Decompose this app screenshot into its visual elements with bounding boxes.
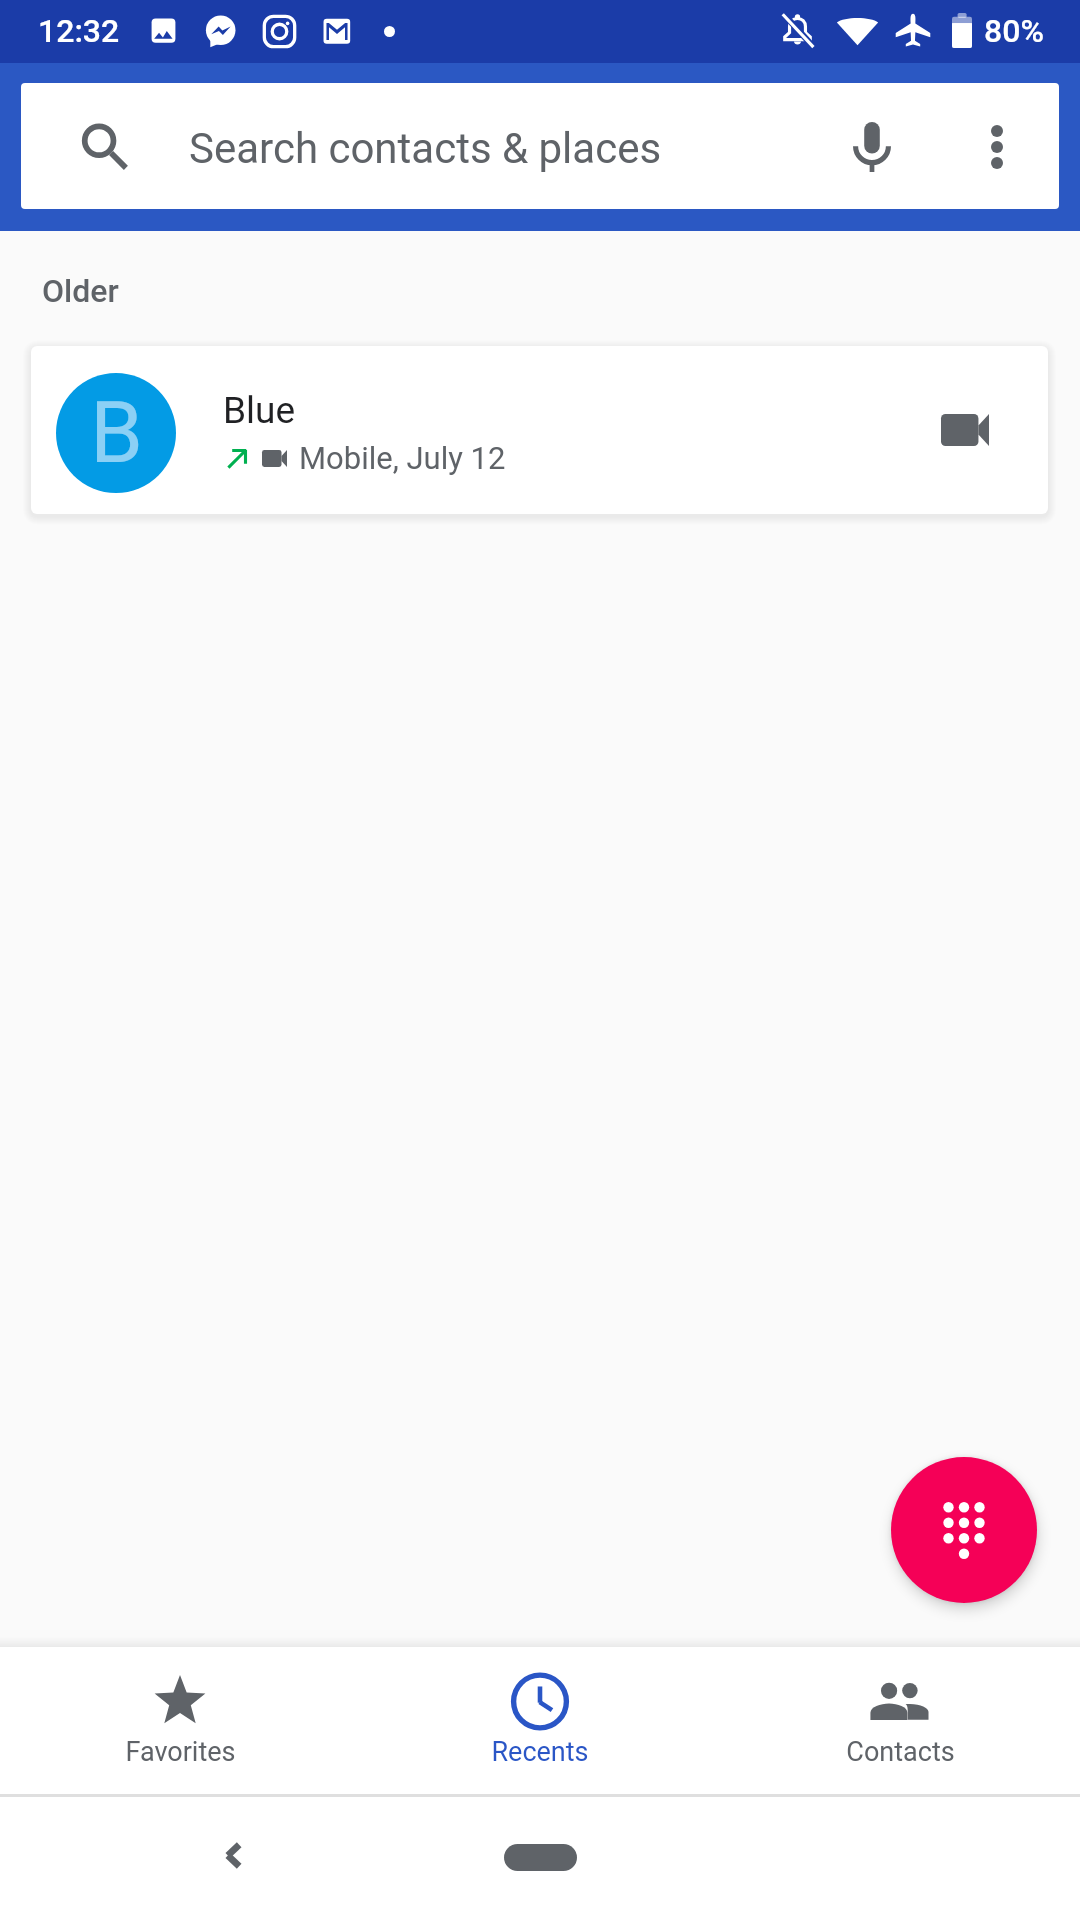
button[interactable]: Favorites <box>0 1647 360 1795</box>
staticText: Favorites <box>125 1736 236 1768</box>
button[interactable]: Voice search <box>821 96 923 198</box>
button[interactable]: B <box>31 346 1048 514</box>
staticText: 12:32 <box>38 12 120 50</box>
button[interactable]: Recents <box>360 1647 720 1795</box>
staticText: B <box>90 383 143 483</box>
staticText: Recents <box>491 1736 589 1768</box>
staticText: Mobile, July 12 <box>299 440 506 476</box>
button[interactable]: Home <box>504 1844 577 1871</box>
staticText: Contacts <box>846 1736 955 1768</box>
button[interactable]: Search contacts & places <box>21 83 1059 209</box>
button[interactable]: Contacts <box>720 1647 1080 1795</box>
staticText: Search contacts & places <box>189 124 662 173</box>
staticText: Blue <box>223 389 296 432</box>
staticText: Older <box>42 272 119 310</box>
button[interactable]: Back <box>211 1833 255 1877</box>
button[interactable]: More options <box>946 96 1048 198</box>
staticText: 80% <box>984 12 1044 50</box>
button[interactable]: Dialpad <box>891 1457 1037 1603</box>
button[interactable]: Video call <box>917 382 1013 478</box>
